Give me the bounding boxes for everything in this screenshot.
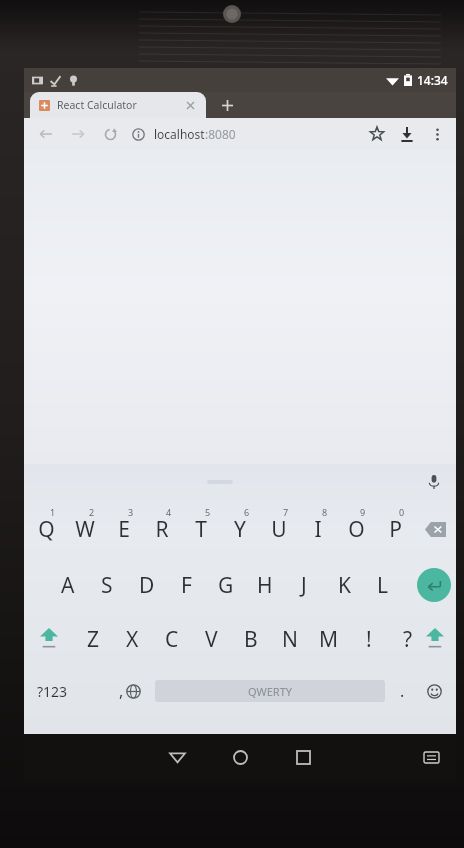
button[interactable]: M [310, 612, 348, 666]
staticText: B [244, 625, 258, 654]
button[interactable]: G [207, 558, 245, 612]
button[interactable]: localhost [132, 118, 362, 150]
button[interactable]: V [192, 612, 230, 666]
staticText: 9 [360, 506, 366, 518]
button[interactable]: P [376, 500, 414, 558]
staticText: 5 [205, 506, 211, 518]
button[interactable]: A [49, 558, 87, 612]
staticText: J [301, 571, 307, 600]
staticText: U [271, 515, 287, 544]
staticText: 2 [89, 506, 95, 518]
button[interactable]: X [113, 612, 151, 666]
staticText: W [75, 515, 95, 544]
staticText: 14:34 [417, 72, 448, 88]
button[interactable]: Hide keyboard [414, 740, 448, 774]
button[interactable]: Forward [64, 120, 92, 148]
button[interactable]: F [167, 558, 205, 612]
button[interactable]: H [246, 558, 284, 612]
staticText: X [126, 625, 139, 654]
button[interactable]: S [88, 558, 126, 612]
staticText: ?123 [37, 682, 68, 701]
button[interactable]: Z [74, 612, 112, 666]
staticText: C [165, 625, 179, 654]
button[interactable]: Close tab [183, 98, 197, 112]
staticText: Z [87, 625, 100, 654]
staticText: 8 [322, 506, 328, 518]
staticText: E [118, 515, 130, 544]
button[interactable]: Backspace [418, 512, 452, 546]
staticText: G [218, 571, 234, 600]
staticText: 4 [166, 506, 172, 518]
button[interactable]: B [232, 612, 270, 666]
button[interactable]: New tab [210, 92, 244, 118]
staticText: Q [38, 515, 55, 544]
button[interactable]: Voice input [420, 468, 448, 496]
button[interactable]: More options [422, 119, 452, 149]
button[interactable]: K [325, 558, 363, 612]
staticText: QWERTY [248, 684, 293, 699]
button[interactable]: D [128, 558, 166, 612]
button[interactable]: Emoji [418, 675, 450, 707]
button[interactable]: Change language [116, 674, 150, 708]
button[interactable]: I [299, 500, 337, 558]
button[interactable]: O [337, 500, 375, 558]
button[interactable]: U [260, 500, 298, 558]
staticText: L [377, 571, 389, 600]
button[interactable]: Period [388, 677, 416, 705]
staticText: S [101, 571, 113, 600]
button[interactable]: Recent apps [280, 734, 326, 780]
button[interactable]: React Calculator [30, 92, 206, 118]
button[interactable]: Shift [32, 619, 66, 659]
staticText: A [61, 571, 75, 600]
staticText: :8080 [205, 126, 236, 142]
staticText: Y [234, 515, 246, 544]
button[interactable]: T [182, 500, 220, 558]
staticText: 1 [50, 506, 56, 518]
staticText: I [314, 515, 322, 544]
staticText: ? [403, 625, 413, 654]
button[interactable]: Home [217, 734, 263, 780]
staticText: 3 [128, 506, 134, 518]
staticText: V [205, 625, 218, 654]
staticText: O [348, 515, 365, 544]
button[interactable]: Y [221, 500, 259, 558]
button[interactable]: ?123 [30, 669, 74, 713]
button[interactable]: Reload [96, 120, 124, 148]
button[interactable]: W [66, 500, 104, 558]
staticText: R [155, 515, 169, 544]
staticText: React Calculator [57, 98, 137, 112]
staticText: 7 [283, 506, 289, 518]
staticText: H [257, 571, 273, 600]
button[interactable]: Back [32, 120, 60, 148]
button[interactable]: J [285, 558, 323, 612]
staticText: T [195, 515, 207, 544]
staticText: F [181, 571, 192, 600]
staticText: localhost [154, 126, 205, 142]
button[interactable]: ? [389, 612, 427, 666]
staticText: K [338, 571, 351, 600]
staticText: 6 [244, 506, 250, 518]
button[interactable]: Comma [106, 676, 136, 706]
button[interactable]: Shift [418, 619, 452, 659]
button[interactable]: R [143, 500, 181, 558]
button[interactable]: Downloads [392, 119, 422, 149]
button[interactable]: Q [27, 500, 65, 558]
staticText: 0 [399, 506, 405, 518]
staticText: D [139, 571, 155, 600]
button[interactable]: N [271, 612, 309, 666]
staticText: , [119, 680, 124, 702]
button[interactable]: E [105, 500, 143, 558]
button[interactable]: Enter [417, 568, 451, 602]
button[interactable]: ! [350, 612, 388, 666]
button[interactable]: C [153, 612, 191, 666]
staticText: ! [366, 625, 372, 654]
button[interactable]: Back [154, 734, 200, 780]
staticText: M [319, 625, 339, 654]
button[interactable]: L [364, 558, 402, 612]
staticText: . [400, 680, 405, 702]
staticText: P [389, 515, 402, 544]
staticText: N [282, 625, 298, 654]
button[interactable]: Space [155, 680, 385, 702]
button[interactable]: Bookmark [362, 119, 392, 149]
